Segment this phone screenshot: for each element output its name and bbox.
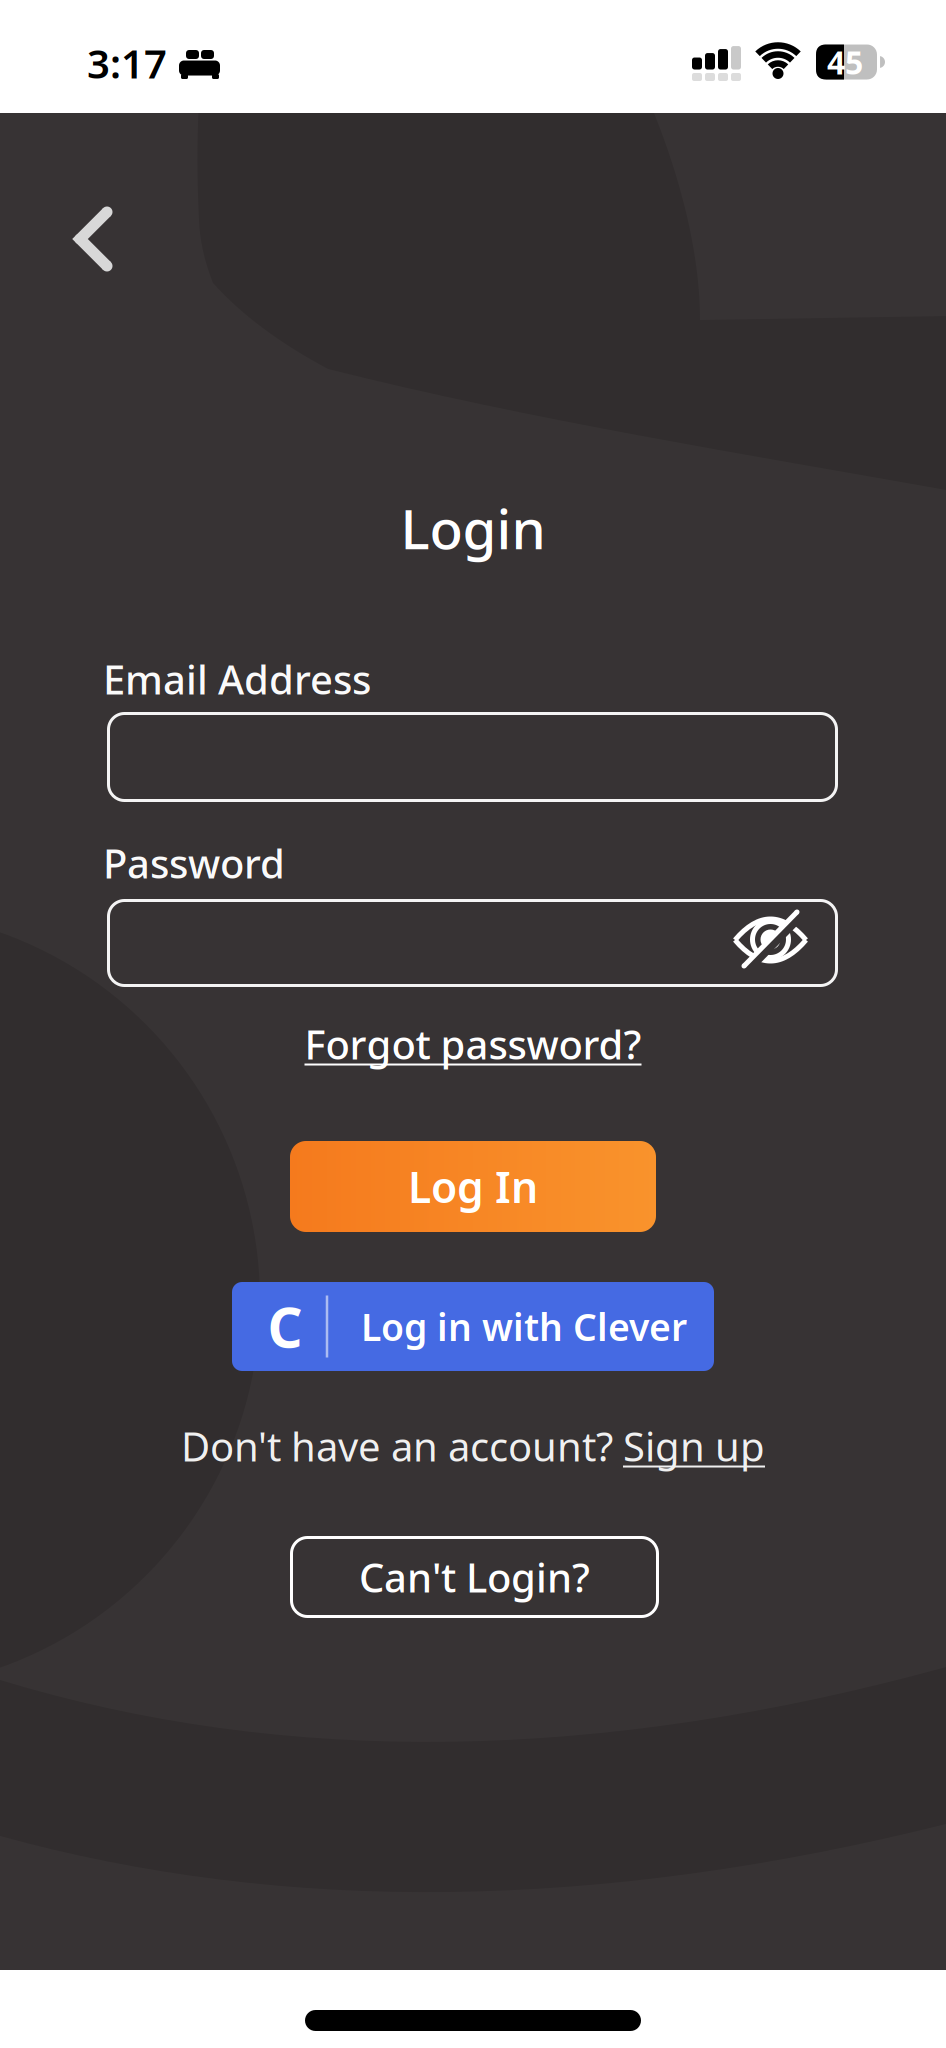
staticText: C — [267, 1290, 302, 1363]
button[interactable]: Log In — [290, 1141, 656, 1232]
button[interactable]: Can't Login? — [290, 1536, 659, 1618]
staticText: 3:17 — [87, 36, 167, 89]
button[interactable]: Password — [107, 899, 838, 987]
staticText: Don't have an account? — [181, 1419, 623, 1472]
staticText: Log in with Clever — [361, 1302, 687, 1351]
staticText: Email Address — [103, 652, 371, 705]
button[interactable]: C — [232, 1282, 714, 1371]
staticText: Login — [400, 492, 545, 564]
button[interactable]: Sign up — [623, 1419, 765, 1472]
button[interactable]: Forgot password? — [304, 1017, 641, 1070]
staticText: Sign up — [623, 1419, 765, 1472]
staticText: Password — [103, 836, 285, 889]
staticText: Forgot password? — [304, 1017, 641, 1070]
button[interactable]: Back — [73, 202, 133, 276]
button[interactable]: Show password — [720, 890, 820, 990]
staticText: Log In — [408, 1158, 538, 1215]
staticText: Can't Login? — [359, 1550, 590, 1603]
staticText: 45 — [827, 41, 863, 83]
button[interactable]: Email Address — [107, 712, 838, 802]
